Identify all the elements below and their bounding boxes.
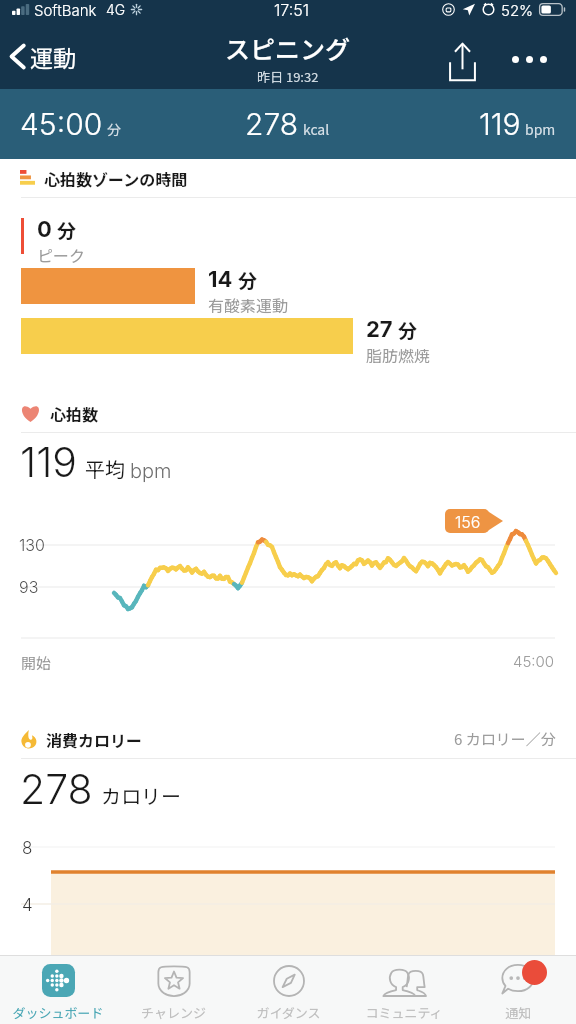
button[interactable]: コミュニティ (346, 956, 461, 1024)
staticText: ダッシュボード (12, 1003, 104, 1022)
staticText: 278 (245, 106, 299, 142)
staticText: 消費カロリー (46, 728, 143, 751)
staticText: 119 (479, 106, 521, 142)
staticText: 52% (501, 1, 534, 19)
staticText: 分 (238, 266, 258, 294)
staticText: 8 (22, 838, 33, 859)
staticText: SoftBank (34, 1, 97, 19)
staticText: 分 (398, 316, 418, 344)
staticText: 27 (366, 316, 393, 343)
staticText: 119 (20, 437, 77, 487)
button[interactable]: Share (439, 32, 486, 91)
staticText: 6 カロリー／分 (454, 728, 556, 750)
staticText: 17:51 (274, 0, 310, 19)
staticText: ピーク (37, 243, 86, 266)
button[interactable]: 通知 (461, 956, 576, 1024)
button[interactable]: 運動 (0, 34, 86, 79)
staticText: チャレンジ (141, 1003, 206, 1022)
staticText: 平均 (85, 454, 125, 483)
button[interactable]: More options (488, 40, 576, 79)
staticText: 45:00 (513, 652, 555, 670)
staticText: 0 (37, 216, 52, 243)
staticText: 脂肪燃焼 (366, 343, 431, 366)
staticText: bpm (525, 119, 556, 139)
button[interactable]: ダッシュボード (0, 956, 116, 1024)
staticText: スピニング (225, 30, 351, 66)
staticText: 通知 (505, 1003, 532, 1022)
staticText: 4G (106, 1, 126, 18)
staticText: kcal (303, 119, 330, 139)
staticText: 14 (208, 266, 233, 293)
staticText: 運動 (30, 40, 76, 73)
button[interactable]: ガイダンス (231, 956, 346, 1024)
staticText: 昨日 19:32 (257, 67, 319, 86)
staticText: 心拍数 (50, 402, 99, 425)
staticText: コミュニティ (365, 1003, 443, 1022)
staticText: カロリー (101, 781, 181, 810)
staticText: ガイダンス (256, 1003, 321, 1022)
staticText: 4 (22, 895, 33, 916)
staticText: 心拍数ゾーンの時間 (44, 167, 188, 190)
staticText: 156 (455, 512, 481, 531)
staticText: 有酸素運動 (208, 293, 289, 316)
staticText: 分 (107, 119, 121, 139)
staticText: 分 (57, 216, 77, 244)
button[interactable]: チャレンジ (116, 956, 231, 1024)
staticText: 93 (19, 577, 39, 596)
staticText: 45:00 (20, 106, 103, 142)
staticText: 開始 (21, 652, 52, 674)
staticText: 130 (19, 535, 45, 554)
staticText: 278 (20, 764, 93, 814)
staticText: bpm (130, 459, 172, 483)
